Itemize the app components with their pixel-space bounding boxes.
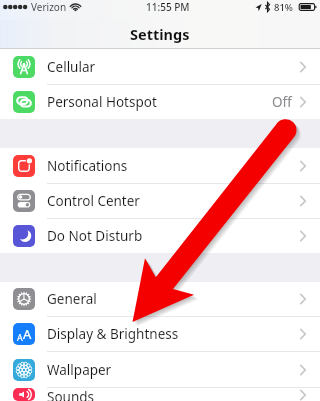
button[interactable]: Sounds: [0, 388, 320, 401]
staticText: General: [47, 290, 97, 308]
button[interactable]: A: [0, 317, 320, 351]
staticText: Notifications: [47, 157, 128, 175]
staticText: Off: [272, 93, 292, 111]
staticText: Cellular: [47, 58, 96, 76]
staticText: 11:55 PM: [146, 0, 190, 14]
staticText: Control Center: [47, 192, 140, 210]
button[interactable]: Cellular: [0, 49, 320, 84]
button[interactable]: Control Center: [0, 184, 320, 218]
staticText: Settings: [130, 24, 190, 44]
button[interactable]: Wallpaper: [0, 352, 320, 387]
staticText: 81%: [274, 1, 293, 14]
staticText: Verizon: [31, 0, 67, 14]
staticText: Sounds: [47, 388, 95, 401]
staticText: A: [23, 325, 32, 343]
staticText: A: [17, 331, 23, 343]
staticText: Wallpaper: [47, 361, 112, 379]
staticText: Display & Brightness: [47, 325, 179, 343]
staticText: Personal Hotspot: [47, 93, 157, 111]
button[interactable]: Do Not Disturb: [0, 219, 320, 253]
button[interactable]: Personal Hotspot: [0, 85, 320, 119]
staticText: Do Not Disturb: [47, 227, 143, 245]
button[interactable]: Notifications: [0, 148, 320, 183]
button[interactable]: General: [0, 282, 320, 316]
